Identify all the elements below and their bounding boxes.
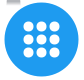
button[interactable]: Apps [4,2,78,76]
